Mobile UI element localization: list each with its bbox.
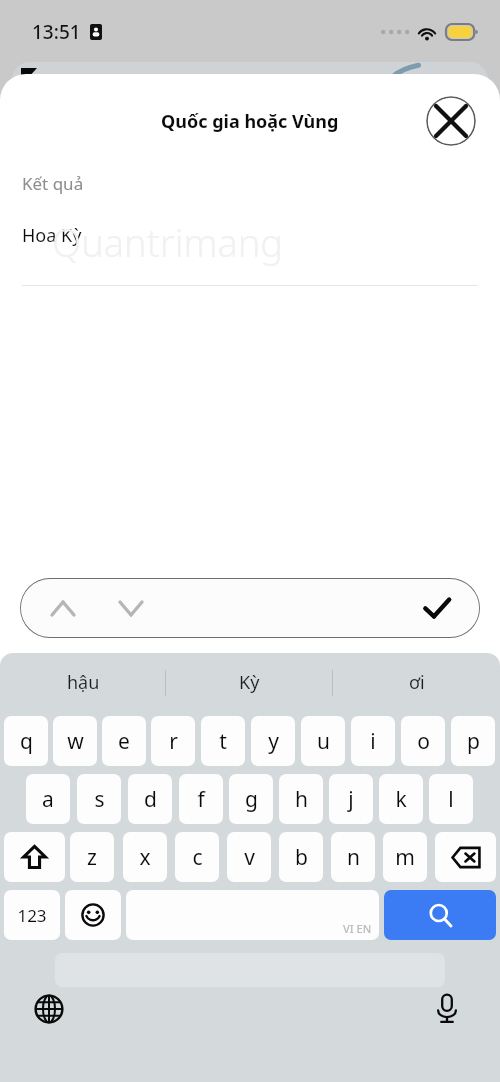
button[interactable]: Xong <box>410 581 464 635</box>
staticText: m <box>395 843 415 872</box>
button[interactable]: Biểu tượng cảm xúc <box>65 890 121 940</box>
staticText: Quantrimang <box>52 216 284 268</box>
button[interactable]: e <box>102 716 146 766</box>
button[interactable]: i <box>351 716 395 766</box>
button[interactable]: hậu <box>0 653 166 712</box>
staticText: e <box>118 727 130 756</box>
button[interactable]: Trước <box>36 581 90 635</box>
staticText: h <box>295 785 308 814</box>
staticText: g <box>245 785 258 814</box>
button[interactable]: l <box>429 774 473 824</box>
staticText: s <box>94 785 105 814</box>
button[interactable]: d <box>128 774 172 824</box>
staticText: Kết quả <box>22 172 84 195</box>
button[interactable]: f <box>179 774 223 824</box>
staticText: v <box>244 843 255 872</box>
staticText: ơi <box>409 670 425 695</box>
staticText: f <box>197 785 205 814</box>
staticText: i <box>370 727 376 756</box>
button[interactable]: q <box>4 716 48 766</box>
button[interactable]: Tìm kiếm <box>384 890 496 940</box>
button[interactable]: Nhập bằng giọng nói <box>424 986 470 1032</box>
button[interactable]: w <box>53 716 97 766</box>
button[interactable]: 123 <box>4 890 60 940</box>
staticText: z <box>87 843 97 872</box>
staticText: o <box>417 727 430 756</box>
button[interactable]: r <box>151 716 195 766</box>
staticText: y <box>268 727 279 756</box>
button[interactable]: a <box>26 774 70 824</box>
button[interactable]: m <box>383 832 427 882</box>
button[interactable]: Sau <box>104 581 158 635</box>
staticText: p <box>467 727 480 756</box>
staticText: 123 <box>17 904 47 927</box>
staticText: a <box>42 785 54 814</box>
button[interactable]: j <box>329 774 373 824</box>
staticText: Quốc gia hoặc Vùng <box>161 109 339 134</box>
button[interactable]: Shift <box>4 832 65 882</box>
button[interactable]: p <box>451 716 495 766</box>
staticText: t <box>219 727 227 756</box>
button[interactable]: Đóng <box>426 96 476 146</box>
button[interactable]: y <box>251 716 295 766</box>
button[interactable]: s <box>77 774 121 824</box>
staticText: 13:51 <box>32 19 81 45</box>
staticText: n <box>347 843 360 872</box>
staticText: Kỳ <box>239 670 260 695</box>
button[interactable]: ơi <box>333 653 500 712</box>
button[interactable]: Đổi bàn phím <box>26 986 72 1032</box>
staticText: j <box>348 785 354 814</box>
staticText: k <box>395 785 407 814</box>
staticText: c <box>192 843 203 872</box>
button[interactable]: z <box>70 832 114 882</box>
button[interactable]: c <box>175 832 219 882</box>
button[interactable]: t <box>201 716 245 766</box>
staticText: q <box>20 727 33 756</box>
staticText: l <box>448 785 454 814</box>
button[interactable]: x <box>123 832 167 882</box>
button[interactable]: Kỳ <box>166 653 333 712</box>
button[interactable]: u <box>301 716 345 766</box>
staticText: x <box>139 843 151 872</box>
staticText: Hoa Kỳ <box>22 223 82 248</box>
staticText: b <box>295 843 308 872</box>
button[interactable]: v <box>227 832 271 882</box>
staticText: VI EN <box>343 921 372 936</box>
button[interactable]: Xóa <box>435 832 496 882</box>
staticText: u <box>317 727 330 756</box>
staticText: r <box>169 727 178 756</box>
button[interactable]: k <box>379 774 423 824</box>
staticText: w <box>67 727 84 756</box>
button[interactable]: g <box>229 774 273 824</box>
button[interactable]: Dấu cách <box>126 890 379 940</box>
staticText: d <box>144 785 157 814</box>
button[interactable]: h <box>279 774 323 824</box>
staticText: hậu <box>67 670 100 695</box>
button[interactable]: o <box>401 716 445 766</box>
button[interactable]: Hoa Kỳ <box>0 206 500 264</box>
button[interactable]: b <box>279 832 323 882</box>
button[interactable]: n <box>331 832 375 882</box>
